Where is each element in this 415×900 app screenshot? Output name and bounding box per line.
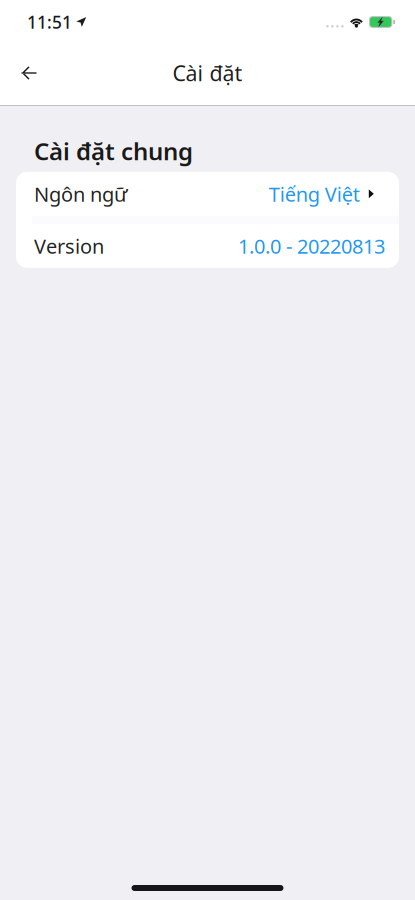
staticText: Cài đặt chung [34, 135, 193, 167]
staticText: Version [34, 233, 104, 259]
staticText: 11:51 [27, 10, 72, 33]
staticText: Cài đặt [172, 59, 242, 87]
button[interactable]: Back [0, 50, 58, 96]
staticText: 1.0.0 - 20220813 [238, 233, 385, 259]
staticText: Tiếng Việt [269, 181, 360, 207]
button[interactable]: Ngôn ngữ [16, 172, 399, 216]
staticText: Ngôn ngữ [34, 181, 127, 207]
